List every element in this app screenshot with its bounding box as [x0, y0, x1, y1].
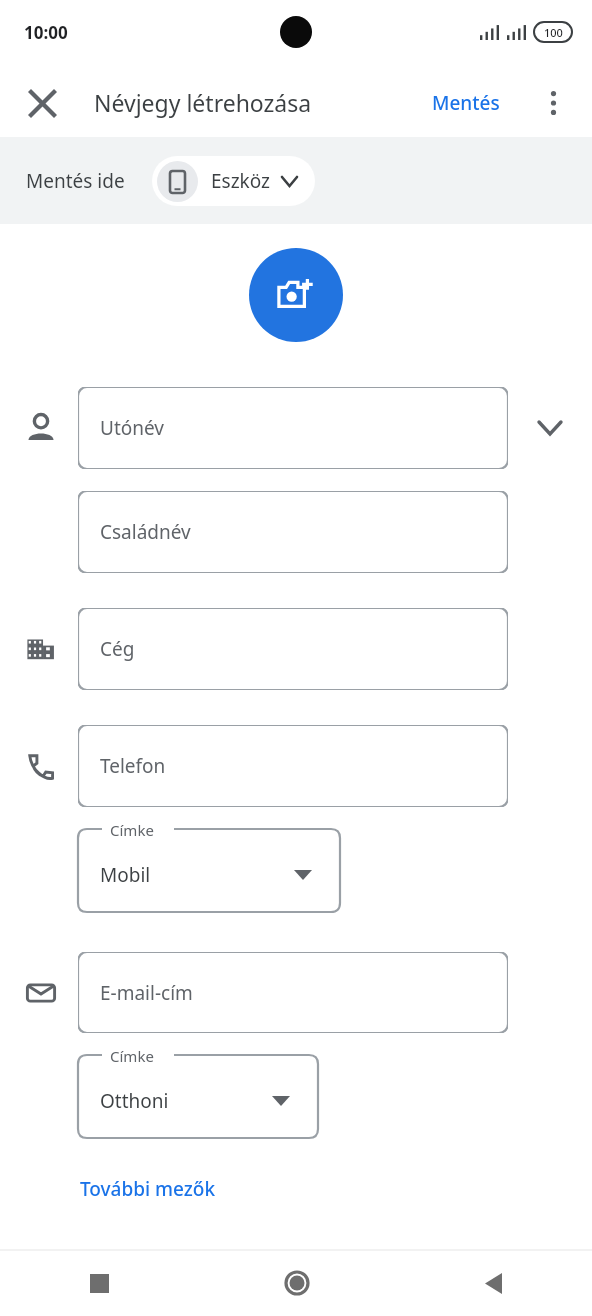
button[interactable]: Bezárás	[14, 75, 70, 131]
staticText: Telefon	[100, 753, 166, 779]
staticText: Mentés	[432, 90, 500, 116]
button[interactable]: Címke	[78, 829, 340, 912]
button[interactable]: Családnév	[78, 491, 508, 573]
button[interactable]: Fénykép hozzáadása	[249, 248, 343, 342]
button[interactable]: Mentés	[426, 84, 506, 122]
button[interactable]: Vissza	[395, 1250, 592, 1316]
button[interactable]: Utónév	[78, 387, 508, 469]
staticText: E-mail-cím	[100, 980, 193, 1006]
staticText: Mobil	[100, 862, 151, 888]
staticText: Családnév	[100, 519, 191, 545]
staticText: 100	[544, 25, 563, 40]
staticText: 10:00	[24, 21, 68, 44]
staticText: Címke	[110, 1046, 154, 1066]
staticText: Utónév	[100, 415, 164, 441]
button[interactable]: Cég	[78, 608, 508, 690]
button[interactable]: Továbbiak megjelenítése	[526, 404, 574, 452]
staticText: Otthoni	[100, 1088, 169, 1114]
staticText: További mezők	[80, 1176, 216, 1202]
button[interactable]: Kezdőképernyő	[198, 1250, 395, 1316]
staticText: Mentés ide	[26, 168, 125, 194]
staticText: Eszköz	[211, 168, 270, 194]
button[interactable]: E-mail-cím	[78, 952, 508, 1033]
button[interactable]: Legutóbbiak	[0, 1250, 198, 1316]
button[interactable]: Címke	[78, 1055, 318, 1138]
staticText: Cég	[100, 636, 135, 662]
button[interactable]: További mezők	[72, 1170, 224, 1208]
button[interactable]: Eszköz	[152, 156, 315, 206]
staticText: Névjegy létrehozása	[94, 87, 312, 118]
button[interactable]: További lehetőségek	[526, 76, 580, 130]
button[interactable]: Telefon	[78, 725, 508, 807]
staticText: Címke	[110, 820, 154, 840]
